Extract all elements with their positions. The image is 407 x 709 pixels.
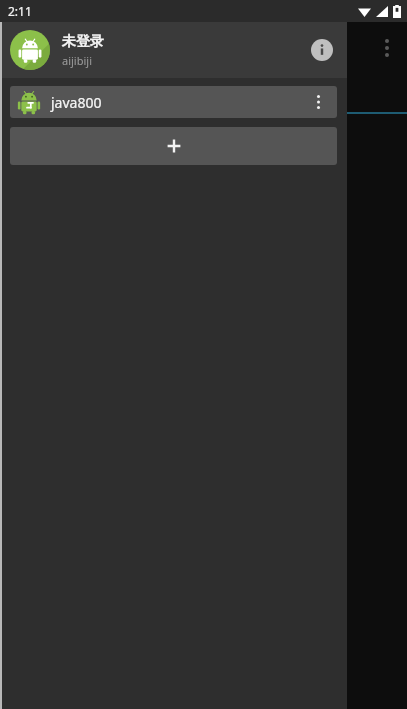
staticText: 未登录	[62, 33, 104, 51]
staticText: java800	[51, 93, 307, 112]
button[interactable]: Add account	[10, 127, 337, 165]
button[interactable]: java800	[10, 86, 337, 118]
staticText: 2:11	[8, 3, 32, 19]
button[interactable]: More options	[371, 28, 403, 68]
button[interactable]: 未登录	[0, 22, 347, 78]
button[interactable]: Account options	[307, 87, 329, 117]
button[interactable]: Info	[307, 35, 337, 65]
staticText: aijibiji	[62, 53, 92, 68]
